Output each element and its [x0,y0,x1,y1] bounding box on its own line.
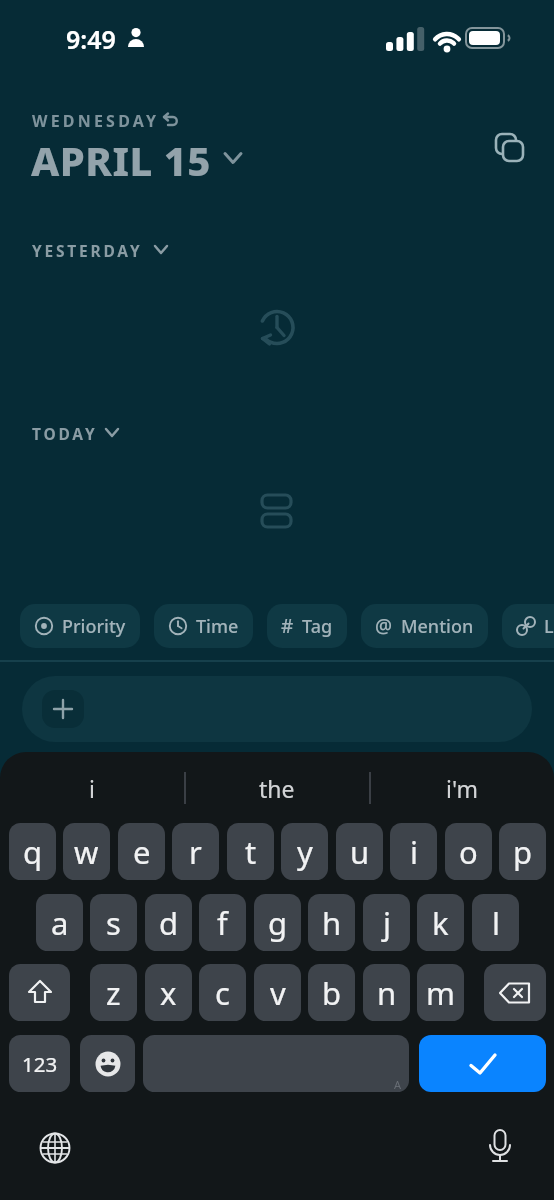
staticText: c [215,972,230,1014]
staticText: a [51,902,69,944]
staticText: A [394,1077,402,1092]
staticText: j [383,902,391,944]
staticText: k [432,902,449,944]
staticText: l [492,902,500,944]
staticText: Tag [302,614,333,639]
staticText: s [106,902,121,944]
staticText: the [259,773,295,804]
staticText: i [89,773,95,804]
staticText: b [322,972,342,1014]
staticText: YESTERDAY [32,240,143,261]
staticText: Time [196,614,239,639]
staticText: h [322,902,342,944]
staticText: u [350,831,370,873]
staticText: APRIL 15 [31,133,211,187]
staticText: z [106,972,121,1014]
staticText: f [217,902,228,944]
staticText: q [23,831,43,873]
staticText: Priority [62,614,126,639]
staticText: e [133,831,151,873]
staticText: m [426,972,455,1014]
staticText: # [281,613,294,639]
staticText: r [189,831,202,873]
staticText: w [74,831,99,873]
staticText: WEDNESDAY [32,110,160,132]
staticText: 123 [22,1050,58,1078]
staticText: t [245,831,257,873]
staticText: d [159,902,179,944]
staticText: Mention [401,614,474,639]
staticText: i [410,831,418,873]
staticText: n [377,972,397,1014]
staticText: @ [375,613,393,639]
staticText: v [270,972,286,1014]
staticText: g [268,902,288,944]
staticText: o [459,831,478,873]
staticText: Link [544,614,554,639]
staticText: x [160,972,177,1014]
staticText: p [513,831,533,873]
staticText: TODAY [32,423,98,444]
staticText: y [297,831,313,873]
staticText: 9:49 [66,22,116,56]
staticText: i'm [446,773,478,804]
